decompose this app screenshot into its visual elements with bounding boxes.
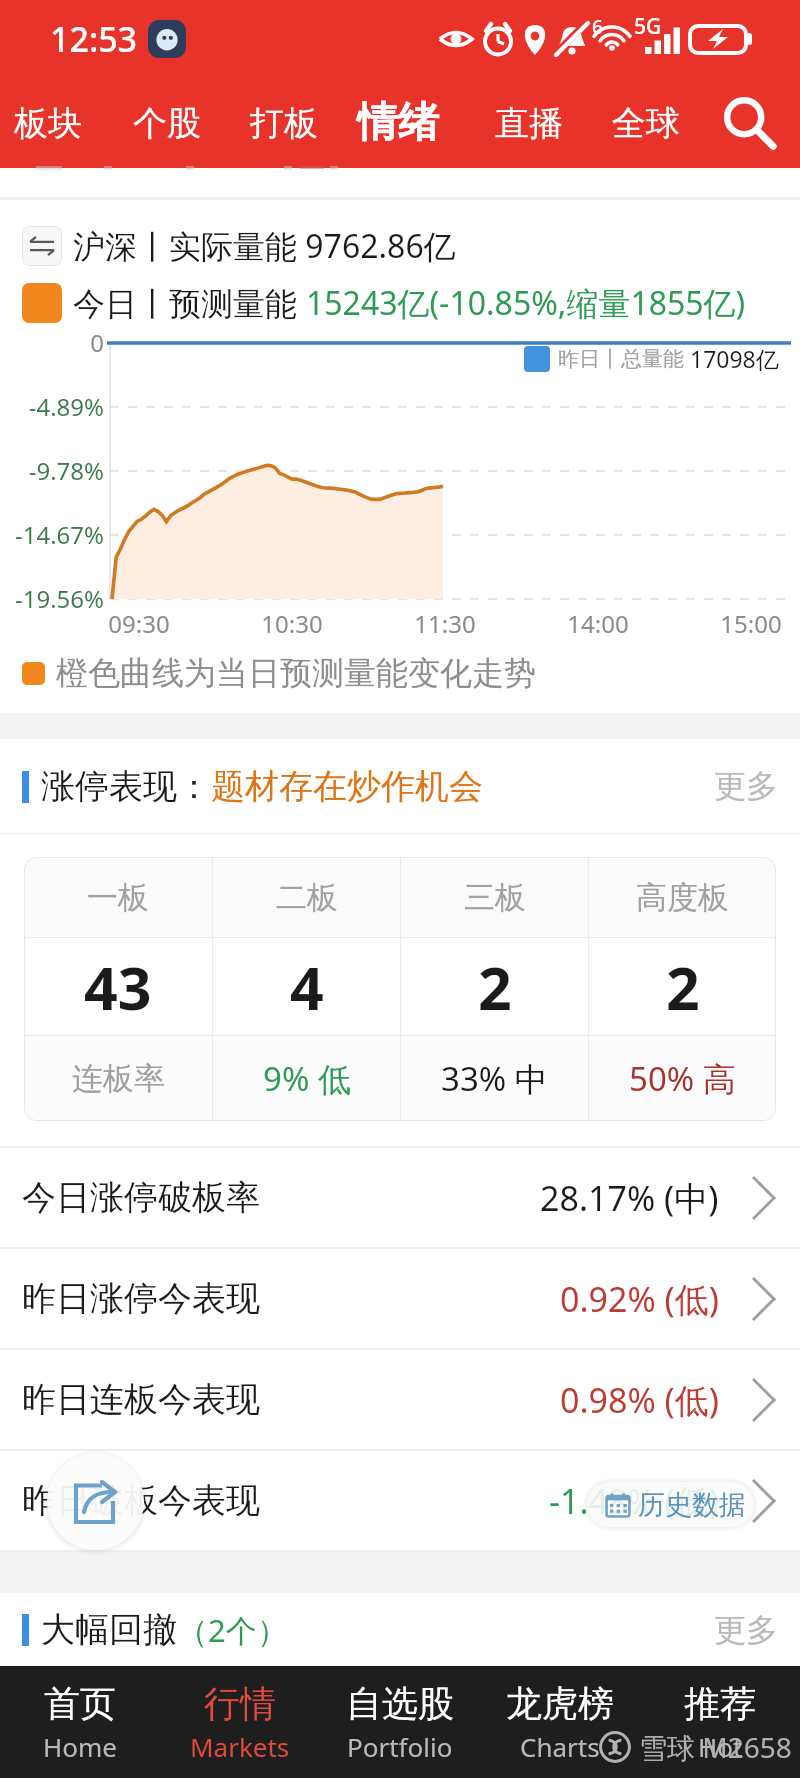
staticText: 大幅回撤 bbox=[41, 1608, 177, 1651]
button[interactable]: 历史数据 bbox=[587, 1482, 754, 1527]
staticText: 12:53 bbox=[50, 16, 138, 62]
staticText: -1.48% (低) bbox=[549, 1478, 719, 1524]
staticText: 板块 bbox=[14, 102, 82, 145]
staticText: Markets bbox=[190, 1729, 290, 1764]
button[interactable]: 昨日连板今表现 bbox=[0, 1350, 800, 1449]
button[interactable]: 推荐 bbox=[640, 1666, 800, 1778]
staticText: 5G bbox=[634, 12, 662, 41]
button[interactable]: 涨停表现： bbox=[0, 739, 800, 833]
staticText: 17098亿 bbox=[690, 343, 779, 374]
staticText: 情绪 bbox=[357, 97, 439, 149]
staticText: 题材存在炒作机会 bbox=[211, 765, 483, 808]
button[interactable]: Search bbox=[706, 81, 790, 165]
button[interactable]: 直播 bbox=[495, 102, 563, 145]
staticText: 高度板 bbox=[636, 878, 729, 917]
staticText: 15243亿(-10.85%,缩量1855亿) bbox=[306, 281, 746, 325]
staticText: 2 bbox=[478, 947, 512, 1027]
button[interactable]: 昨日破板今表现 bbox=[0, 1451, 800, 1550]
staticText: 0.98% (低) bbox=[560, 1377, 719, 1423]
staticText: 15:00 bbox=[701, 607, 800, 640]
staticText: 首页 bbox=[44, 1681, 116, 1726]
button[interactable]: 个股 bbox=[133, 102, 201, 145]
button[interactable]: 打板 bbox=[250, 102, 318, 145]
staticText: 9% 低 bbox=[263, 1056, 351, 1101]
staticText: 昨日涨停今表现 bbox=[22, 1277, 260, 1320]
staticText: -19.56% bbox=[0, 582, 104, 615]
staticText: 更多 bbox=[714, 1610, 778, 1650]
staticText: Hot bbox=[698, 1729, 743, 1764]
staticText: 28.17% (中) bbox=[540, 1175, 719, 1221]
staticText: 11:30 bbox=[395, 607, 495, 640]
staticText: Home bbox=[43, 1729, 117, 1764]
staticText: 0.92% (低) bbox=[560, 1276, 719, 1322]
button[interactable]: 大幅回撤 bbox=[0, 1593, 800, 1666]
staticText: 历史数据 bbox=[638, 1488, 744, 1522]
staticText: 6 bbox=[592, 14, 603, 40]
staticText: 推荐 bbox=[684, 1681, 756, 1726]
staticText: 昨日丨总量能 bbox=[558, 344, 690, 373]
staticText: 沪深丨实际量能 9762.86亿 bbox=[73, 224, 456, 268]
button[interactable]: 首页 bbox=[0, 1666, 160, 1778]
staticText: 二板 bbox=[276, 878, 338, 917]
staticText: 自选股 bbox=[346, 1681, 454, 1726]
button[interactable]: 昨日涨停今表现 bbox=[0, 1249, 800, 1348]
staticText: 昨日破板今表现 bbox=[22, 1479, 260, 1522]
staticText: 橙色曲线为当日预测量能变化走势 bbox=[56, 653, 536, 693]
staticText: 三板 bbox=[464, 878, 526, 917]
button[interactable]: 情绪 bbox=[357, 97, 439, 149]
staticText: 雪球 M2658 bbox=[639, 1728, 792, 1766]
button[interactable]: 今日涨停破板率 bbox=[0, 1148, 800, 1247]
staticText: 全球 bbox=[612, 102, 680, 145]
staticText: 09:30 bbox=[89, 607, 189, 640]
staticText: （2个） bbox=[177, 1609, 288, 1651]
staticText: 昨日连板今表现 bbox=[22, 1378, 260, 1421]
staticText: 2 bbox=[666, 947, 700, 1027]
staticText: 今日涨停破板率 bbox=[22, 1176, 260, 1219]
staticText: 涨停表现： bbox=[41, 765, 211, 808]
staticText: Portfolio bbox=[347, 1729, 453, 1764]
staticText: 连板率 bbox=[72, 1059, 165, 1098]
staticText: 个股 bbox=[133, 102, 201, 145]
staticText: 0 bbox=[0, 326, 104, 359]
staticText: 打板 bbox=[250, 102, 318, 145]
button[interactable]: 板块 bbox=[14, 102, 82, 145]
staticText: 10:30 bbox=[242, 607, 342, 640]
staticText: 50% 高 bbox=[629, 1056, 736, 1101]
staticText: Charts bbox=[520, 1729, 600, 1764]
staticText: -9.78% bbox=[0, 454, 104, 487]
staticText: 14:00 bbox=[548, 607, 648, 640]
staticText: 43 bbox=[84, 947, 152, 1027]
staticText: 一板 bbox=[87, 878, 149, 917]
button[interactable]: 全球 bbox=[612, 102, 680, 145]
button[interactable]: Share bbox=[47, 1453, 144, 1550]
staticText: -14.67% bbox=[0, 518, 104, 551]
staticText: 直播 bbox=[495, 102, 563, 145]
button[interactable]: 行情 bbox=[160, 1666, 320, 1778]
button[interactable]: 龙虎榜 bbox=[480, 1666, 640, 1778]
staticText: 4 bbox=[290, 947, 324, 1027]
staticText: -4.89% bbox=[0, 390, 104, 423]
staticText: 行情 bbox=[204, 1681, 276, 1726]
button[interactable]: 自选股 bbox=[320, 1666, 480, 1778]
staticText: 龙虎榜 bbox=[506, 1681, 614, 1726]
staticText: 33% 中 bbox=[441, 1056, 548, 1101]
staticText: 今日丨预测量能 bbox=[73, 281, 306, 325]
staticText: 更多 bbox=[714, 766, 778, 806]
